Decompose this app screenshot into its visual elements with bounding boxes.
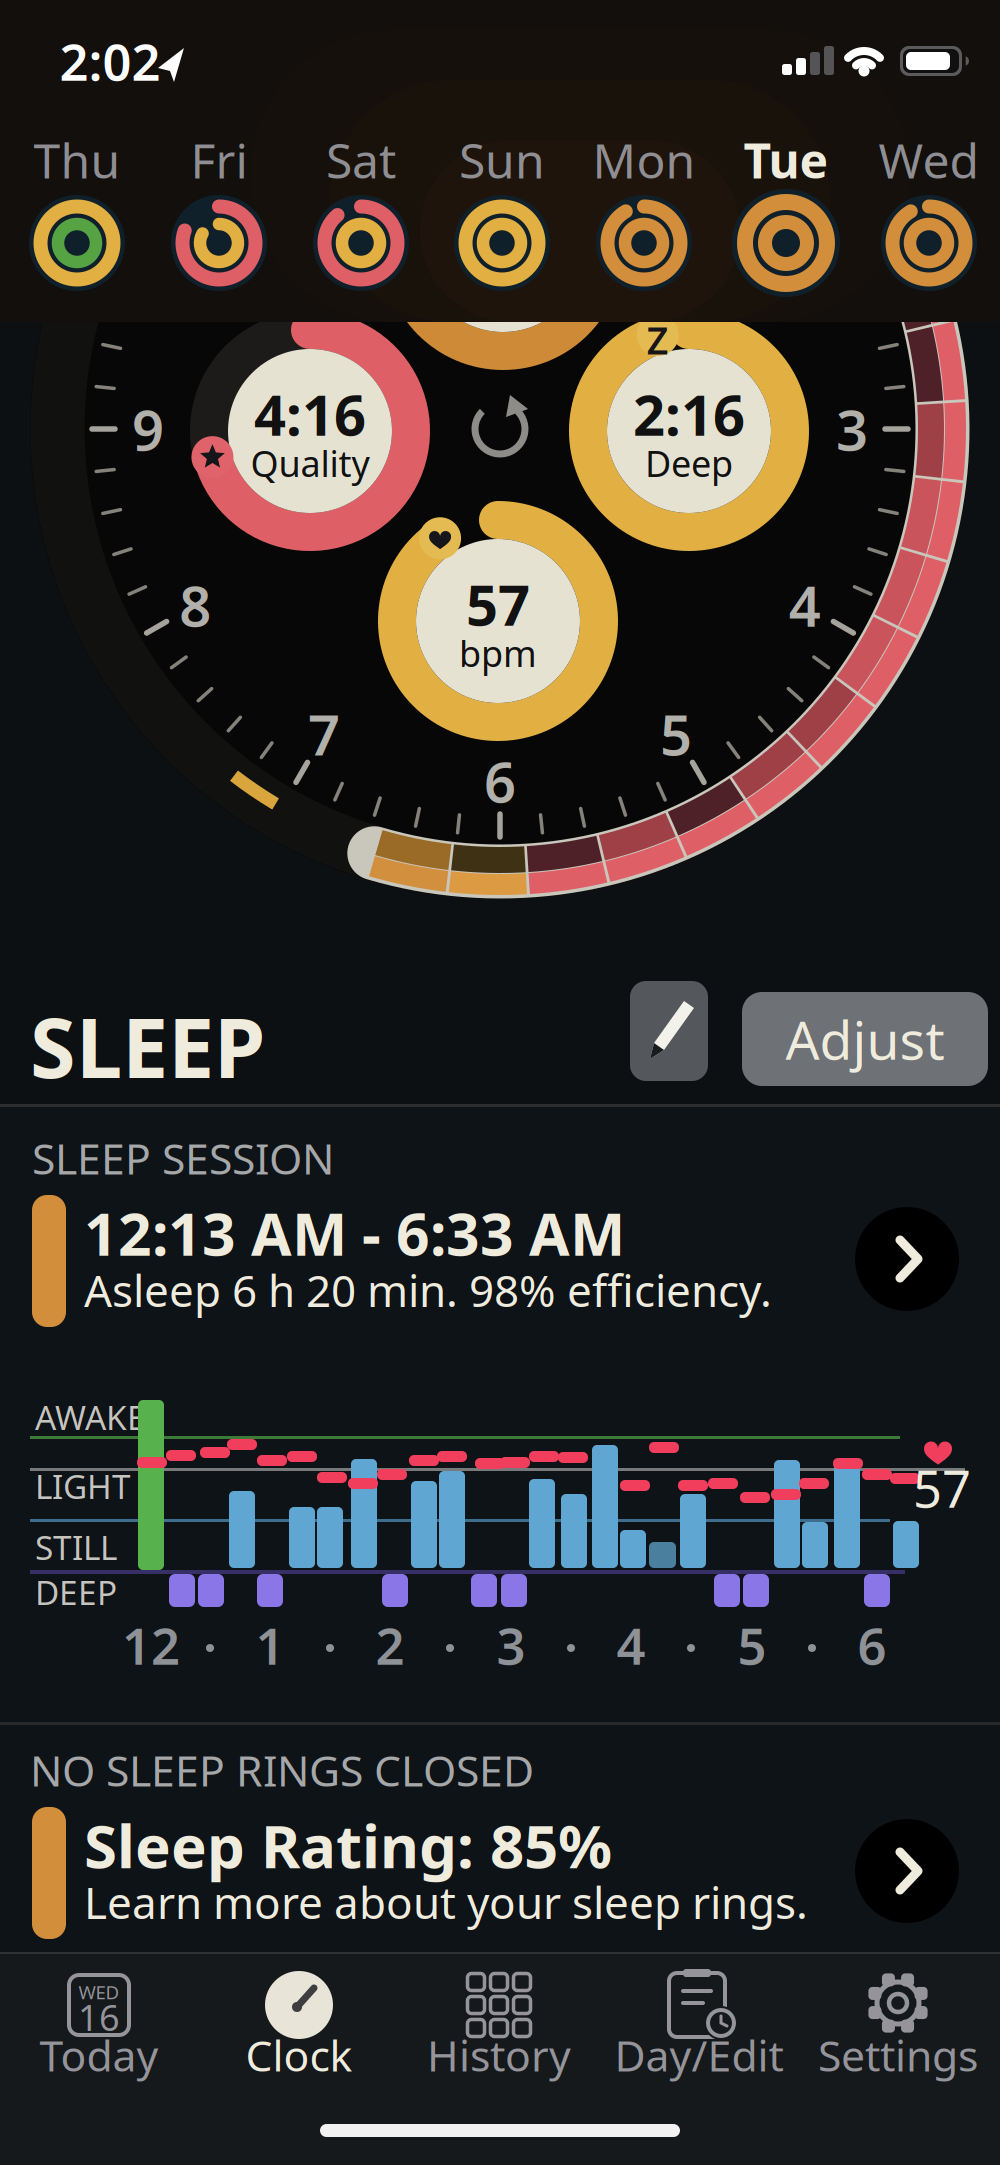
staticText: 57 — [466, 567, 530, 641]
staticText: Quality — [250, 439, 369, 487]
button[interactable] — [630, 981, 708, 1081]
staticText: History — [427, 2027, 571, 2083]
staticText: NO SLEEP RINGS CLOSED — [30, 1742, 534, 1798]
button[interactable] — [855, 1819, 959, 1923]
button[interactable]: History — [409, 1955, 589, 2115]
staticText: 3 — [836, 392, 868, 466]
button[interactable]: Clock — [209, 1955, 389, 2115]
staticText: 9 — [132, 392, 164, 466]
staticText: 3 — [496, 1611, 525, 1679]
staticText: STILL — [35, 1525, 117, 1569]
staticText: 12:13 AM - 6:33 AM — [84, 1194, 625, 1272]
button[interactable]: 12:13 AM - 6:33 AM — [32, 1193, 907, 1327]
staticText: 5 — [660, 697, 692, 771]
button[interactable]: Mon — [577, 118, 711, 308]
staticText: Clock — [245, 2027, 352, 2083]
button[interactable]: Wed — [862, 118, 996, 308]
staticText: 4 — [789, 568, 821, 642]
staticText: 8 — [179, 568, 211, 642]
staticText: Z — [647, 315, 669, 365]
staticText: Sat — [326, 128, 396, 192]
staticText: Settings — [818, 2027, 978, 2083]
button[interactable]: Sat — [294, 118, 428, 308]
button[interactable]: Sleep Rating: 85% — [32, 1805, 907, 1939]
staticText: Asleep 6 h 20 min. 98% efficiency. — [84, 1261, 772, 1319]
staticText: 57 — [913, 1454, 971, 1522]
staticText: Learn more about your sleep rings. — [84, 1873, 808, 1931]
staticText: Fri — [190, 128, 247, 192]
staticText: bpm — [459, 629, 537, 677]
staticText: SLEEP — [30, 991, 265, 1101]
staticText: Wed — [878, 128, 979, 192]
staticText: 6 — [484, 744, 516, 818]
staticText: Tue — [743, 128, 828, 192]
staticText: 10 — [163, 216, 227, 290]
staticText: Sleep Rating: 85% — [84, 1805, 612, 1885]
staticText: Thu — [33, 128, 120, 192]
staticText: 7 — [308, 697, 340, 771]
staticText: SLEEP SESSION — [32, 1130, 334, 1186]
button[interactable]: Adjust — [742, 992, 988, 1086]
staticText: 4 — [616, 1611, 645, 1679]
staticText: 16 — [78, 1993, 120, 2041]
staticText: 2:02 — [59, 27, 160, 95]
staticText: 2 — [789, 216, 821, 290]
staticText: Day/Edit — [614, 2027, 783, 2083]
staticText: AWAKE — [35, 1395, 146, 1439]
button[interactable]: Settings — [808, 1955, 988, 2115]
staticText: DEEP — [35, 1570, 117, 1614]
staticText: Adjust — [785, 1004, 944, 1074]
staticText: 2 — [375, 1611, 404, 1679]
button[interactable]: Fri — [152, 118, 286, 308]
button[interactable] — [855, 1207, 959, 1311]
staticText: Deep — [645, 439, 733, 487]
staticText: Today — [39, 2027, 158, 2083]
staticText: 12 — [122, 1611, 180, 1679]
staticText: Sun — [459, 128, 545, 192]
staticText: 1 — [255, 1611, 284, 1679]
button[interactable]: Tue — [719, 118, 853, 308]
staticText: 2:16 — [633, 377, 745, 451]
staticText: 5 — [737, 1611, 766, 1679]
staticText: WED — [78, 1980, 119, 2004]
staticText: 6 — [857, 1611, 886, 1679]
button[interactable]: WED — [9, 1955, 189, 2115]
button[interactable]: Sun — [435, 118, 569, 308]
button[interactable]: Day/Edit — [609, 1955, 789, 2115]
staticText: 4:16 — [254, 377, 366, 451]
staticText: Mon — [592, 128, 695, 192]
button[interactable]: Thu — [10, 118, 144, 308]
staticText: LIGHT — [35, 1464, 131, 1508]
